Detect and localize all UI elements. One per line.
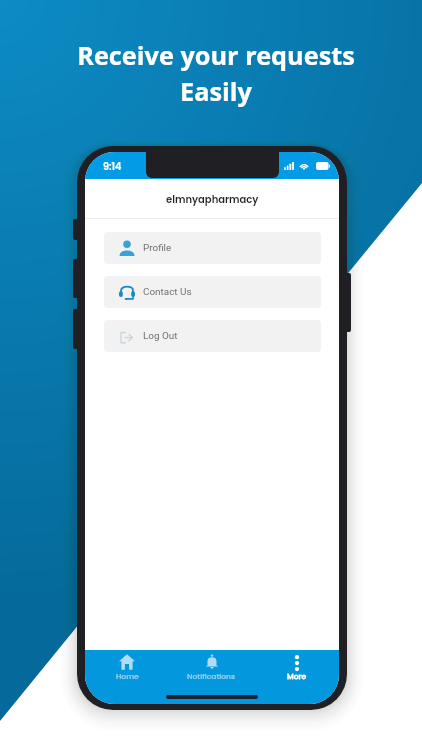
- button[interactable]: Home: [85, 654, 169, 682]
- staticText: elmnyapharmacy: [166, 192, 259, 206]
- button[interactable]: Notifications: [169, 654, 254, 682]
- button[interactable]: More: [254, 654, 339, 682]
- button[interactable]: Log Out: [104, 320, 321, 352]
- staticText: Notifications: [187, 671, 236, 682]
- staticText: Log Out: [143, 330, 178, 342]
- staticText: Home: [116, 671, 139, 682]
- staticText: Contact Us: [143, 286, 192, 298]
- staticText: 9:14: [103, 160, 122, 174]
- button[interactable]: Profile: [104, 232, 321, 264]
- staticText: More: [287, 671, 307, 682]
- staticText: Profile: [143, 242, 172, 254]
- button[interactable]: Contact Us: [104, 276, 321, 308]
- staticText: Receive your requests Easily: [10, 38, 422, 109]
